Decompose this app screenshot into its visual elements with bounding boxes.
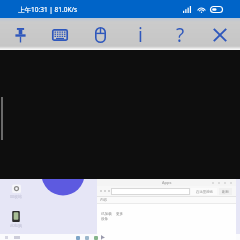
button[interactable]: Close — [200, 18, 240, 50]
button[interactable]: Pin window — [0, 18, 40, 50]
staticText: i — [138, 22, 143, 48]
staticText: 在这里搜索 — [196, 190, 213, 194]
staticText: 上午10:31 | 81.0K/s — [18, 5, 78, 14]
staticText: Apps — [162, 180, 172, 185]
staticText: ? — [176, 22, 185, 48]
button[interactable]: Mouse mode — [80, 18, 120, 50]
staticText: 回收站 — [10, 194, 22, 199]
staticText: 此电脑 — [10, 223, 22, 228]
button[interactable]: Show keyboard — [40, 18, 80, 50]
staticText: 更多 — [116, 212, 124, 217]
staticText: 内容 — [100, 198, 108, 203]
button[interactable]: Info — [120, 18, 160, 50]
staticText: 设备 — [101, 217, 109, 222]
staticText: 刷新 — [222, 190, 229, 194]
button[interactable]: Help — [160, 18, 200, 50]
staticText: 已加载 — [101, 212, 112, 217]
